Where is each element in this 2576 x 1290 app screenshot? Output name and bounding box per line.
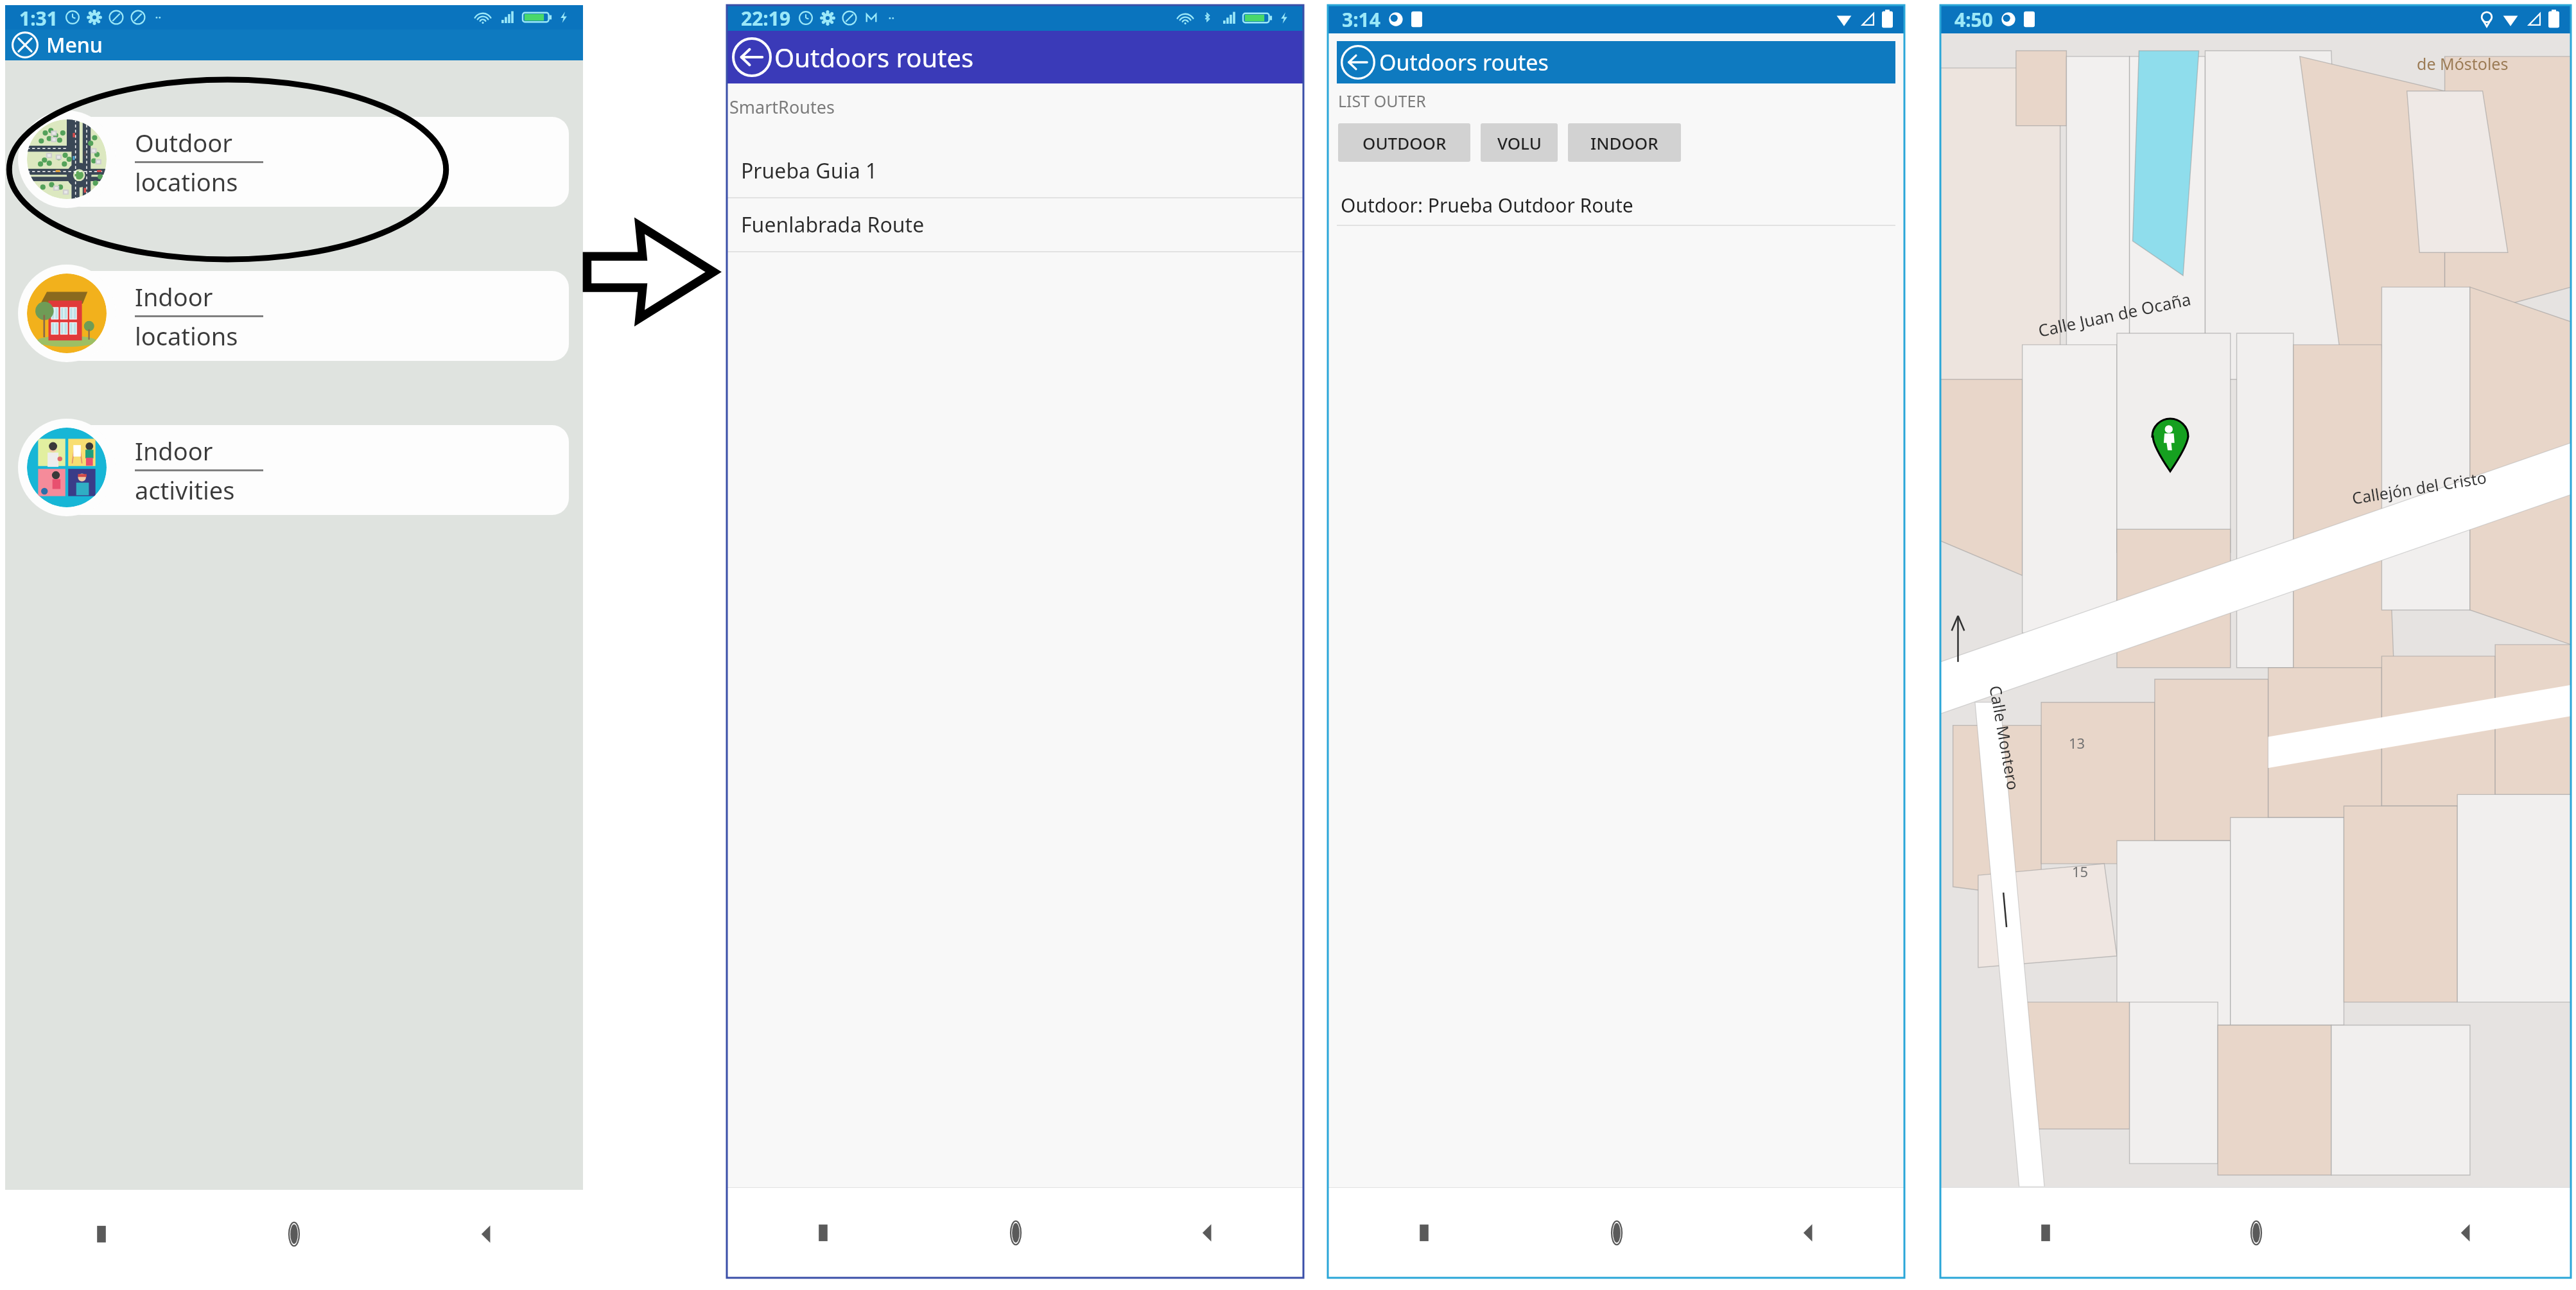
button[interactable]: de Móstoles	[1940, 33, 2571, 1187]
staticText: LIST OUTER	[1338, 90, 1426, 112]
staticText: Outdoors routes	[1379, 48, 1549, 77]
staticText: Calle Juan de Ocaña	[2036, 287, 2193, 341]
button[interactable]: Outdoor	[18, 110, 569, 213]
button[interactable]: Home	[919, 1188, 1111, 1278]
staticText: Callejón del Cristo	[2350, 466, 2488, 509]
button[interactable]: Fuenlabrada Route	[727, 198, 1303, 251]
button[interactable]: VOLU	[1481, 123, 1558, 162]
button[interactable]: Indoor	[18, 265, 569, 367]
button[interactable]: Recents	[5, 1190, 198, 1278]
staticText: Indoor	[135, 280, 213, 313]
staticText: locations	[135, 319, 238, 353]
button[interactable]: Back	[1341, 45, 1375, 80]
button[interactable]: Recents	[1940, 1188, 2151, 1278]
staticText: OUTDOOR	[1362, 132, 1447, 154]
button[interactable]: Back	[732, 37, 772, 77]
staticText: Indoor	[135, 434, 213, 467]
staticText: 15	[2072, 862, 2089, 881]
button[interactable]: Home	[198, 1190, 390, 1278]
staticText: Outdoor: Prueba Outdoor Route	[1341, 192, 1633, 218]
staticText: 3:14	[1342, 6, 1380, 33]
staticText: INDOOR	[1590, 132, 1658, 154]
button[interactable]: Home	[2151, 1188, 2361, 1278]
staticText: 13	[2069, 733, 2085, 753]
staticText: Calle Montero	[1985, 684, 2025, 792]
staticText: activities	[135, 473, 235, 507]
button[interactable]: Back	[390, 1190, 583, 1278]
button[interactable]: INDOOR	[1568, 123, 1681, 162]
button[interactable]: Recents	[727, 1188, 919, 1278]
button[interactable]: Back	[2361, 1188, 2571, 1278]
staticText: VOLU	[1497, 132, 1542, 154]
button[interactable]: OUTDOOR	[1338, 123, 1470, 162]
staticText: Menu	[46, 31, 103, 59]
staticText: SmartRoutes	[729, 95, 835, 119]
button[interactable]: Home	[1520, 1188, 1712, 1278]
staticText: de Móstoles	[2417, 53, 2509, 74]
staticText: 1:31	[19, 5, 58, 30]
staticText: 22:19	[741, 5, 791, 31]
button[interactable]: Close	[12, 31, 39, 58]
button[interactable]: Back	[1111, 1188, 1303, 1278]
staticText: locations	[135, 165, 238, 198]
staticText: Outdoors routes	[774, 40, 974, 74]
staticText: Fuenlabrada Route	[741, 211, 925, 239]
staticText: 4:50	[1954, 6, 1993, 33]
button[interactable]: Outdoor: Prueba Outdoor Route	[1328, 185, 1904, 225]
button[interactable]: Indoor	[18, 419, 569, 521]
button[interactable]: Prueba Guia 1	[727, 144, 1303, 197]
button[interactable]: Recents	[1328, 1188, 1520, 1278]
button[interactable]: Back	[1337, 41, 1895, 83]
staticText: Outdoor	[135, 126, 232, 159]
button[interactable]: Back	[1712, 1188, 1904, 1278]
staticText: Prueba Guia 1	[741, 157, 878, 185]
